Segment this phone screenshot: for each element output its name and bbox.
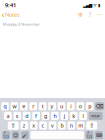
button[interactable]: n: [67, 121, 75, 130]
staticText: ▂▄▆ ᯤ ▮: [83, 2, 100, 8]
staticText: ⌫: [95, 103, 103, 109]
button[interactable]: [30, 131, 84, 139]
staticText: x: [32, 122, 35, 129]
staticText: ☺: [13, 132, 18, 138]
button[interactable]: j: [60, 112, 68, 120]
staticText: ‹: [1, 9, 4, 20]
staticText: e: [22, 103, 25, 110]
staticText: r: [32, 103, 34, 110]
button[interactable]: u: [58, 102, 65, 110]
button[interactable]: w: [11, 102, 18, 110]
staticText: Notes: [5, 11, 20, 18]
staticText: .?123: [3, 131, 9, 139]
staticText: s: [16, 112, 19, 119]
button[interactable]: f: [32, 112, 40, 120]
staticText: m: [78, 122, 83, 129]
button[interactable]: y: [48, 102, 56, 110]
button[interactable]: m: [77, 121, 84, 130]
staticText: ⇧: [89, 122, 94, 129]
button[interactable]: t: [39, 102, 46, 110]
button[interactable]: ⌨: [95, 131, 103, 139]
button[interactable]: New note: [78, 11, 83, 17]
staticText: z: [23, 122, 26, 129]
button[interactable]: g: [42, 112, 49, 120]
button[interactable]: k: [70, 112, 77, 120]
staticText: f: [35, 112, 37, 119]
staticText: ⌨: [96, 133, 102, 138]
button[interactable]: o: [76, 102, 84, 110]
button[interactable]: q: [1, 102, 9, 110]
button[interactable]: More options: [97, 11, 102, 17]
button[interactable]: s: [13, 112, 21, 120]
staticText: i: [70, 103, 71, 110]
staticText: 🎤: [22, 133, 27, 138]
button[interactable]: .?123: [2, 131, 10, 139]
button[interactable]: l: [79, 112, 87, 120]
staticText: y: [50, 103, 53, 110]
button[interactable]: ⇧: [8, 121, 19, 130]
button[interactable]: ⌫: [95, 102, 104, 110]
button[interactable]: r: [29, 102, 37, 110]
button[interactable]: v: [49, 121, 56, 130]
button[interactable]: ⇧: [86, 121, 97, 130]
button[interactable]: i: [67, 102, 75, 110]
staticText: q: [3, 103, 6, 110]
button[interactable]: h: [51, 112, 59, 120]
staticText: ⊕: [78, 11, 83, 18]
button[interactable]: ☺: [12, 131, 19, 139]
button[interactable]: x: [30, 121, 38, 130]
staticText: j: [64, 112, 65, 119]
staticText: ⤴: [88, 12, 91, 17]
button[interactable]: d: [23, 112, 30, 120]
staticText: k: [72, 112, 75, 119]
button[interactable]: e: [20, 102, 28, 110]
staticText: n: [70, 122, 73, 129]
staticText: c: [42, 122, 45, 129]
button[interactable]: p: [86, 102, 93, 110]
staticText: v: [51, 122, 54, 129]
staticText: b: [60, 122, 63, 129]
staticText: g: [44, 112, 47, 119]
staticText: l: [83, 112, 84, 119]
staticText: a: [6, 112, 9, 119]
button[interactable]: 🎤: [21, 131, 29, 139]
button[interactable]: Share: [87, 11, 92, 17]
button[interactable]: a: [4, 112, 12, 120]
staticText: w: [12, 103, 16, 110]
staticText: Monday 4 November: [3, 21, 40, 27]
button[interactable]: z: [20, 121, 28, 130]
staticText: t: [42, 103, 44, 110]
button[interactable]: ‹: [0, 10, 22, 19]
button[interactable]: .?123: [86, 131, 93, 139]
staticText: 9:41: [5, 1, 16, 9]
staticText: d: [25, 112, 28, 119]
staticText: u: [60, 103, 63, 110]
staticText: o: [79, 103, 82, 110]
staticText: return: [91, 113, 100, 118]
staticText: h: [53, 112, 56, 119]
button[interactable]: return: [89, 112, 103, 120]
button[interactable]: c: [39, 121, 47, 130]
button[interactable]: b: [58, 121, 66, 130]
staticText: ⇧: [11, 122, 16, 129]
staticText: p: [88, 103, 91, 110]
staticText: ⋯: [96, 11, 102, 18]
staticText: .?123: [86, 131, 92, 139]
